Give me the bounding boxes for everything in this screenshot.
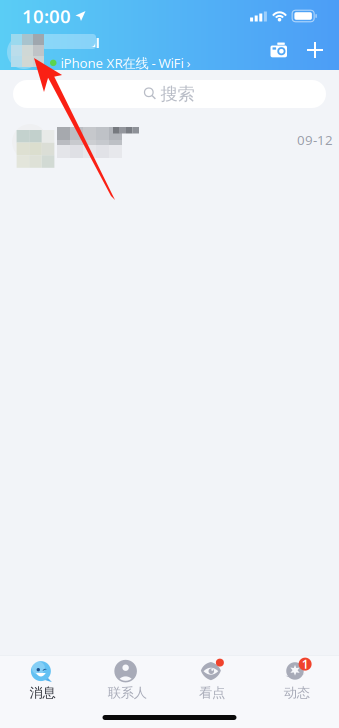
button[interactable]: 消息	[0, 661, 85, 701]
staticText: 搜索	[160, 83, 194, 105]
staticText: 10:00	[22, 4, 71, 28]
button[interactable]: 看点	[169, 661, 254, 701]
button[interactable]: 09-12	[0, 118, 339, 164]
button[interactable]: 搜索	[13, 80, 326, 108]
staticText: 看点	[199, 685, 225, 701]
button[interactable]: Camera	[261, 35, 297, 65]
staticText: 09-12	[297, 131, 333, 149]
button[interactable]: 1	[254, 661, 339, 701]
staticText: 消息	[29, 685, 55, 701]
staticText: iPhone XR在线 - WiFi ›	[60, 54, 190, 72]
staticText: 1	[302, 656, 309, 672]
button[interactable]: iPhone XR在线 - WiFi ›	[0, 31, 166, 69]
staticText: 动态	[284, 685, 310, 701]
staticText: 联系人	[108, 685, 147, 701]
button[interactable]: 联系人	[85, 661, 170, 701]
button[interactable]: Add	[297, 35, 333, 65]
